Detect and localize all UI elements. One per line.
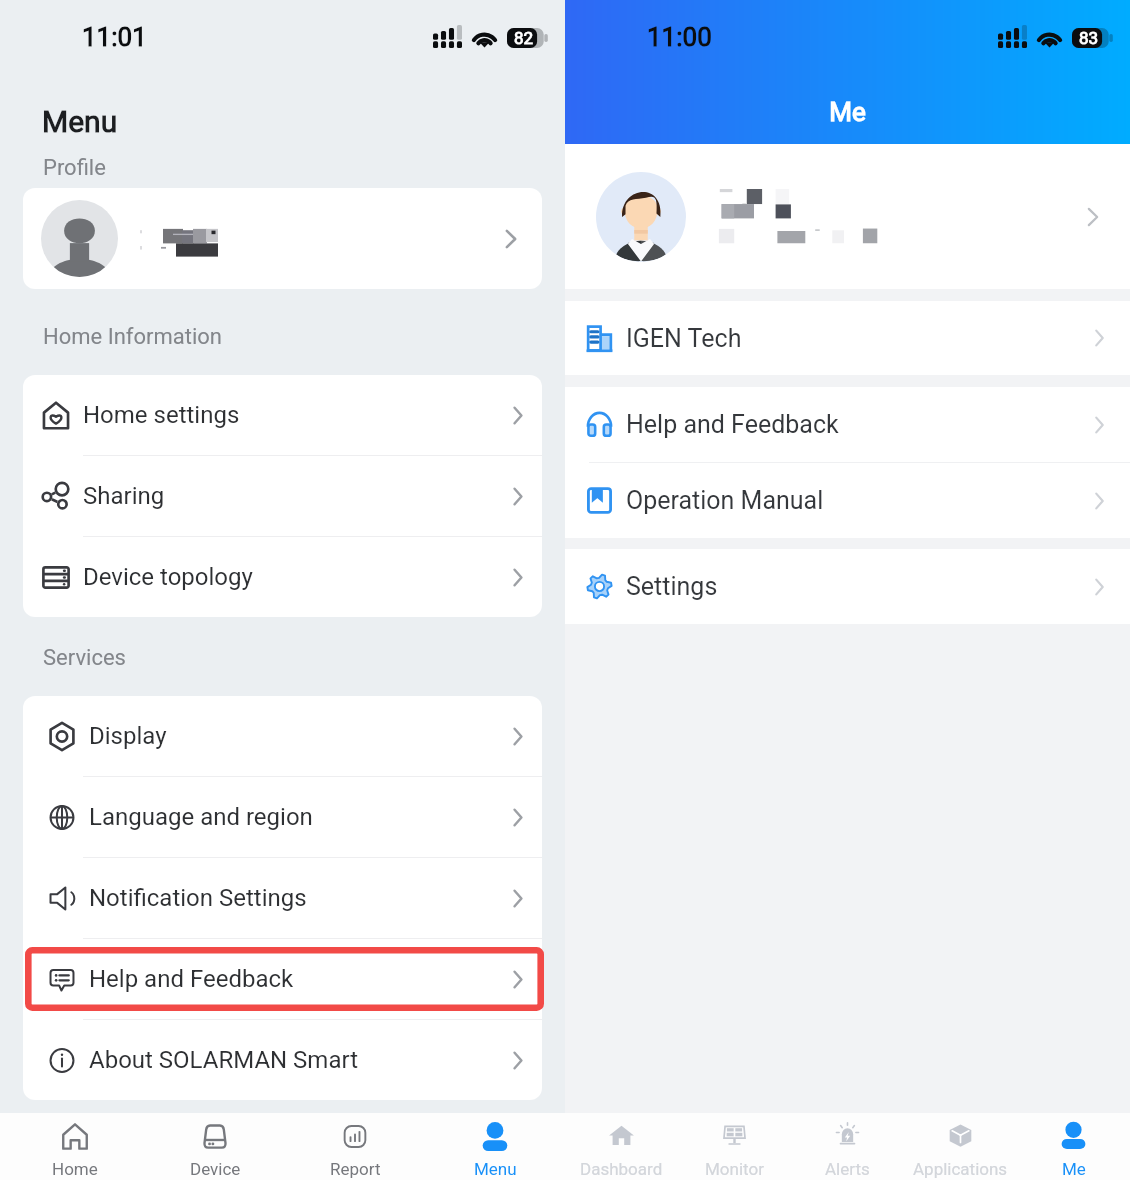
button[interactable]: Alerts: [791, 1113, 904, 1180]
button[interactable]: Language and region: [23, 777, 542, 857]
button[interactable]: Help and Feedback: [565, 387, 1130, 462]
staticText: Me: [1062, 1159, 1086, 1179]
button[interactable]: Dashboard: [565, 1113, 678, 1180]
staticText: Device: [190, 1159, 241, 1179]
button[interactable]: Help and Feedback: [23, 939, 542, 1019]
button[interactable]: Device: [145, 1113, 285, 1180]
staticText: Menu: [42, 104, 118, 139]
staticText: 11:00: [647, 22, 712, 52]
staticText: Sharing: [83, 482, 165, 510]
button[interactable]: About SOLARMAN Smart: [23, 1020, 542, 1100]
staticText: Help and Feedback: [626, 410, 839, 439]
staticText: Notification Settings: [89, 884, 307, 912]
staticText: Report: [330, 1159, 381, 1179]
staticText: 83: [1079, 28, 1099, 48]
staticText: Profile: [43, 155, 106, 181]
button[interactable]: Home settings: [23, 375, 542, 455]
button[interactable]: Sharing: [23, 456, 542, 536]
button[interactable]: Display: [23, 696, 542, 776]
button[interactable]: [23, 188, 542, 289]
staticText: Menu: [474, 1159, 517, 1179]
staticText: IGEN Tech: [626, 324, 742, 353]
staticText: Me: [829, 97, 866, 127]
staticText: Alerts: [825, 1159, 870, 1179]
button[interactable]: IGEN Tech: [565, 301, 1130, 375]
button[interactable]: Notification Settings: [23, 858, 542, 938]
staticText: Home settings: [83, 401, 240, 429]
staticText: Home: [52, 1159, 98, 1179]
staticText: 82: [514, 28, 534, 48]
staticText: Operation Manual: [626, 486, 824, 515]
button[interactable]: Home: [4, 1113, 145, 1180]
staticText: Display: [89, 722, 167, 750]
button[interactable]: Menu: [425, 1113, 565, 1180]
button[interactable]: Monitor: [678, 1113, 791, 1180]
button[interactable]: Settings: [565, 549, 1130, 624]
button[interactable]: Applications: [904, 1113, 1017, 1180]
staticText: About SOLARMAN Smart: [89, 1046, 359, 1074]
button[interactable]: Operation Manual: [565, 463, 1130, 538]
button[interactable]: Report: [285, 1113, 425, 1180]
staticText: Device topology: [83, 563, 253, 591]
button[interactable]: Device topology: [23, 537, 542, 617]
staticText: Applications: [913, 1159, 1008, 1179]
staticText: Home Information: [43, 324, 222, 350]
staticText: Monitor: [705, 1159, 764, 1179]
staticText: Language and region: [89, 803, 313, 831]
staticText: Dashboard: [580, 1159, 663, 1179]
staticText: Help and Feedback: [89, 965, 294, 993]
staticText: Services: [43, 645, 126, 671]
button[interactable]: [565, 144, 1130, 289]
staticText: Settings: [626, 572, 718, 601]
button[interactable]: Me: [1017, 1113, 1130, 1180]
staticText: 11:01: [82, 22, 147, 52]
